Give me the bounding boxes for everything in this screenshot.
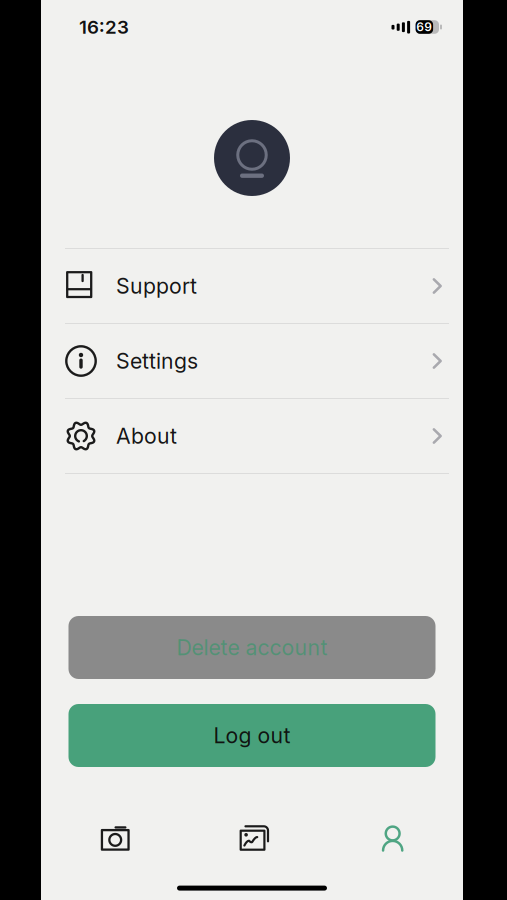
staticText: 16:23 bbox=[79, 16, 129, 38]
button[interactable]: Photos bbox=[182, 824, 322, 852]
staticText: 69 bbox=[416, 20, 432, 34]
staticText: Support bbox=[116, 273, 197, 299]
button[interactable]: Profile bbox=[322, 823, 463, 853]
staticText: Settings bbox=[116, 348, 198, 374]
button[interactable]: Settings bbox=[41, 324, 463, 398]
staticText: Delete account bbox=[176, 635, 327, 660]
staticText: About bbox=[116, 423, 177, 449]
staticText: Log out bbox=[213, 723, 290, 748]
button[interactable]: Support bbox=[41, 249, 463, 323]
button[interactable]: Log out bbox=[68, 704, 435, 767]
button[interactable]: Camera bbox=[41, 824, 182, 852]
button[interactable]: Delete account bbox=[68, 616, 435, 679]
button[interactable]: About bbox=[41, 399, 463, 473]
